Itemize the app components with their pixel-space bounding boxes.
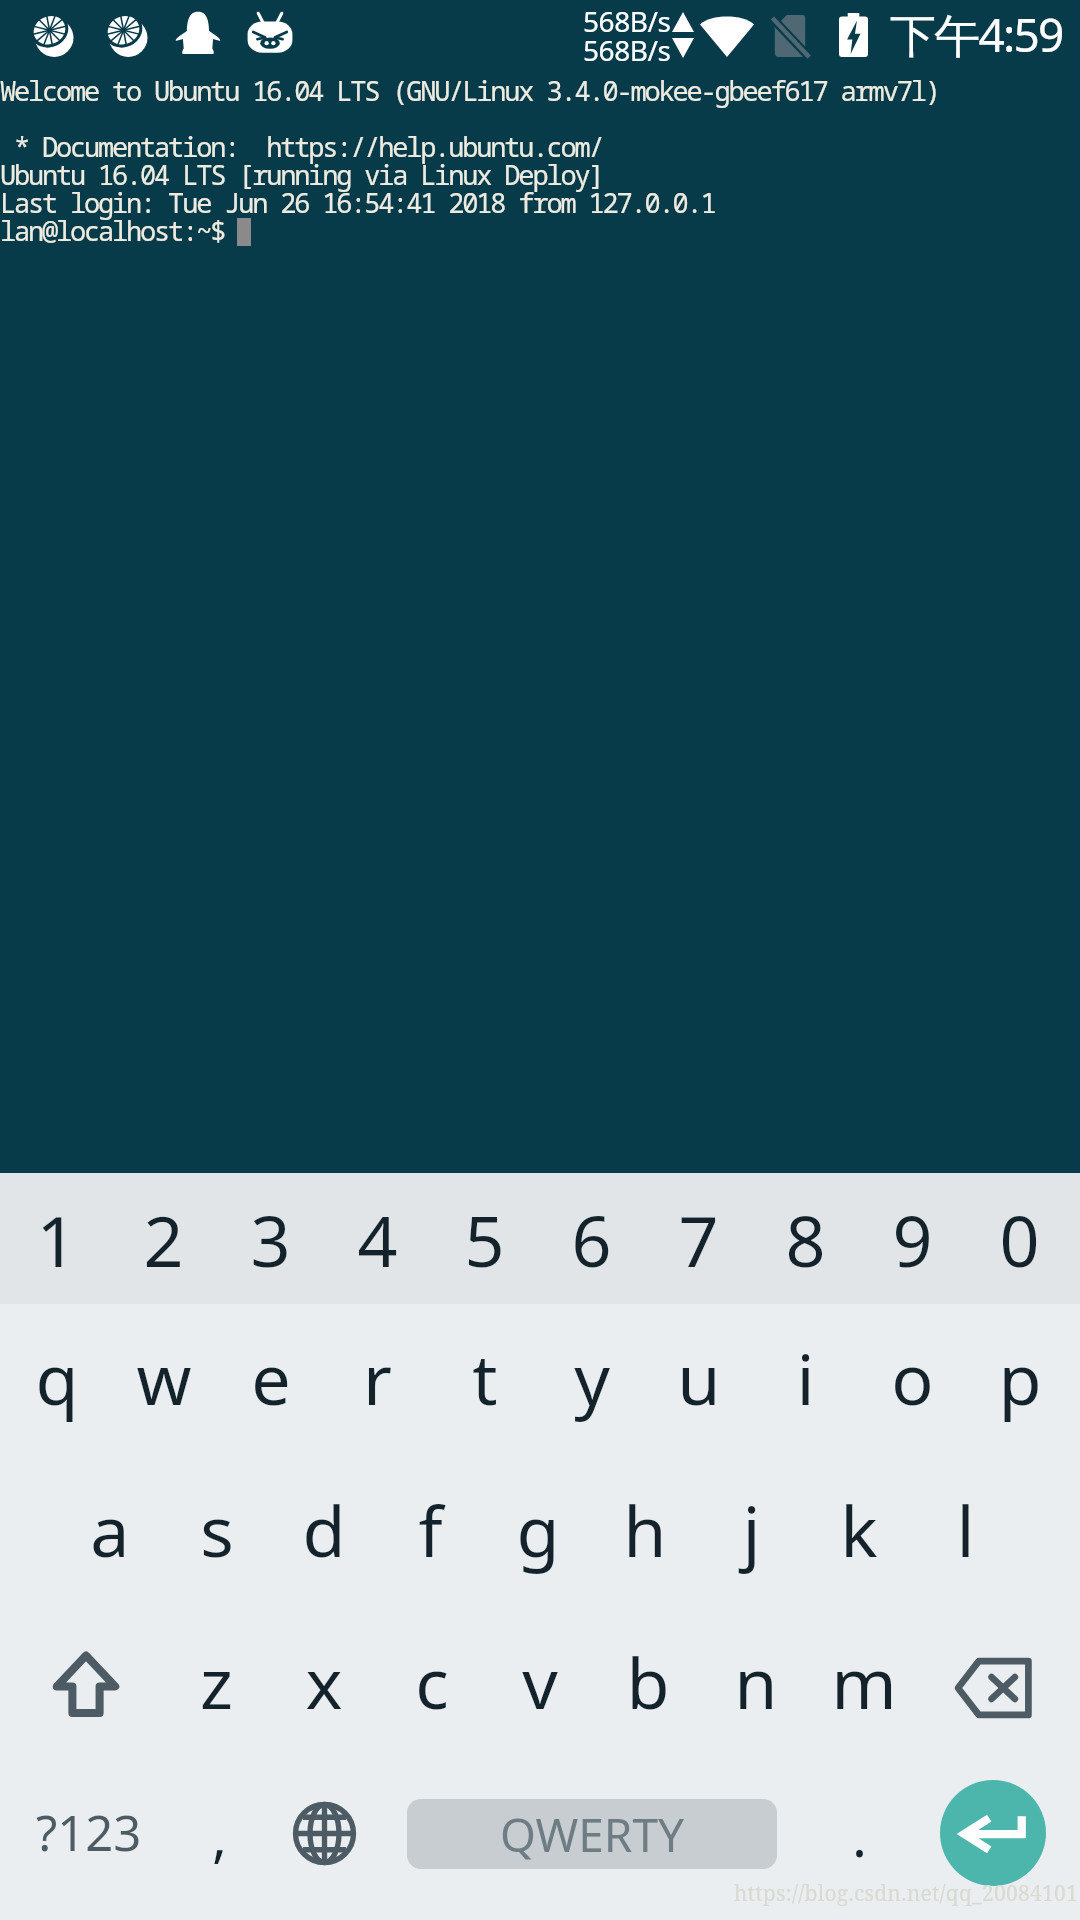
- button[interactable]: 1: [3, 1173, 110, 1304]
- staticText: q: [35, 1330, 79, 1425]
- button[interactable]: k: [805, 1456, 912, 1608]
- button[interactable]: l: [912, 1456, 1019, 1608]
- staticText: u: [677, 1330, 721, 1425]
- staticText: x: [305, 1634, 343, 1729]
- button[interactable]: c: [378, 1608, 486, 1760]
- button[interactable]: y: [538, 1304, 645, 1456]
- staticText: 下午4:59: [890, 3, 1063, 66]
- button[interactable]: d: [270, 1456, 377, 1608]
- button[interactable]: Terminal output: [0, 70, 1080, 1920]
- staticText: z: [200, 1634, 233, 1729]
- staticText: 3: [250, 1192, 291, 1287]
- button[interactable]: Backspace: [918, 1608, 1080, 1760]
- button[interactable]: 7: [645, 1173, 752, 1304]
- staticText: l: [956, 1482, 975, 1577]
- staticText: k: [840, 1482, 878, 1577]
- button[interactable]: 3: [217, 1173, 324, 1304]
- button[interactable]: t: [431, 1304, 538, 1456]
- staticText: Welcome to Ubuntu 16.04 LTS (GNU/Linux 3…: [0, 72, 939, 249]
- staticText: r: [363, 1330, 392, 1425]
- button[interactable]: 6: [538, 1173, 645, 1304]
- staticText: 6: [571, 1192, 612, 1287]
- button[interactable]: Enter: [940, 1780, 1046, 1886]
- staticText: t: [472, 1330, 498, 1425]
- button[interactable]: z: [162, 1608, 270, 1760]
- button[interactable]: x: [270, 1608, 378, 1760]
- button[interactable]: 9: [859, 1173, 966, 1304]
- button[interactable]: b: [594, 1608, 702, 1760]
- button[interactable]: 0: [966, 1173, 1073, 1304]
- staticText: 4: [357, 1192, 398, 1287]
- staticText: i: [796, 1330, 815, 1425]
- staticText: s: [200, 1482, 234, 1577]
- button[interactable]: 4: [324, 1173, 431, 1304]
- staticText: p: [998, 1330, 1042, 1425]
- staticText: m: [831, 1634, 897, 1729]
- button[interactable]: Change keyboard language: [272, 1760, 377, 1920]
- staticText: 2: [143, 1192, 184, 1287]
- staticText: ,: [212, 1797, 228, 1873]
- staticText: https://blog.csdn.net/qq_20084101: [734, 1879, 1078, 1908]
- button[interactable]: e: [217, 1304, 324, 1456]
- button[interactable]: QWERTY: [407, 1799, 777, 1869]
- button[interactable]: ?123: [4, 1760, 174, 1920]
- button[interactable]: w: [110, 1304, 217, 1456]
- button[interactable]: m: [810, 1608, 918, 1760]
- staticText: o: [891, 1330, 934, 1425]
- staticText: 5: [464, 1192, 505, 1287]
- button[interactable]: Shift: [0, 1608, 162, 1760]
- staticText: 1: [36, 1192, 77, 1287]
- button[interactable]: p: [966, 1304, 1073, 1456]
- button[interactable]: 5: [431, 1173, 538, 1304]
- button[interactable]: a: [56, 1456, 163, 1608]
- button[interactable]: o: [859, 1304, 966, 1456]
- staticText: d: [302, 1482, 346, 1577]
- staticText: 9: [892, 1192, 933, 1287]
- staticText: h: [623, 1482, 667, 1577]
- staticText: ?123: [36, 1799, 142, 1866]
- button[interactable]: r: [324, 1304, 431, 1456]
- staticText: .: [852, 1797, 868, 1873]
- staticText: 0: [999, 1192, 1040, 1287]
- button[interactable]: q: [3, 1304, 110, 1456]
- staticText: f: [418, 1482, 443, 1577]
- staticText: n: [734, 1634, 778, 1729]
- staticText: e: [251, 1330, 291, 1425]
- staticText: w: [136, 1330, 192, 1425]
- staticText: 568B/s 568B/s: [583, 2, 671, 69]
- staticText: 7: [678, 1192, 719, 1287]
- button[interactable]: v: [486, 1608, 594, 1760]
- staticText: 8: [785, 1192, 826, 1287]
- button[interactable]: f: [377, 1456, 484, 1608]
- button[interactable]: h: [591, 1456, 698, 1608]
- staticText: QWERTY: [500, 1803, 685, 1866]
- button[interactable]: i: [752, 1304, 859, 1456]
- button[interactable]: u: [645, 1304, 752, 1456]
- staticText: c: [415, 1634, 449, 1729]
- button[interactable]: s: [163, 1456, 270, 1608]
- staticText: v: [522, 1634, 558, 1729]
- button[interactable]: n: [702, 1608, 810, 1760]
- staticText: g: [516, 1482, 560, 1577]
- staticText: j: [742, 1482, 761, 1577]
- staticText: y: [574, 1330, 610, 1425]
- button[interactable]: 2: [110, 1173, 217, 1304]
- button[interactable]: ,: [170, 1760, 270, 1920]
- button[interactable]: .: [810, 1760, 910, 1920]
- button[interactable]: j: [698, 1456, 805, 1608]
- staticText: a: [90, 1482, 130, 1577]
- button[interactable]: g: [484, 1456, 591, 1608]
- button[interactable]: 8: [752, 1173, 859, 1304]
- staticText: b: [626, 1634, 670, 1729]
